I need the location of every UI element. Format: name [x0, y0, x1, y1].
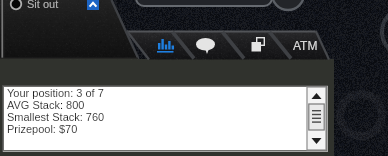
staticText: ATM	[293, 39, 318, 52]
button[interactable]: Statistics	[157, 37, 177, 55]
staticText: AVG Stack: 800	[7, 99, 85, 111]
button[interactable]: Tables	[251, 37, 269, 55]
staticText: Smallest Stack: 760	[7, 111, 105, 123]
button[interactable]: Expand panel	[87, 0, 99, 10]
button[interactable]: Scroll list	[307, 87, 326, 150]
button[interactable]: Chat	[196, 38, 218, 55]
button[interactable]: Sit out toggle	[9, 0, 23, 11]
staticText: Prizepool: $70	[7, 123, 78, 135]
button[interactable]: ATM	[288, 38, 322, 53]
button[interactable]: Sit out	[27, 0, 59, 10]
staticText: Your position: 3 of 7	[7, 87, 104, 99]
